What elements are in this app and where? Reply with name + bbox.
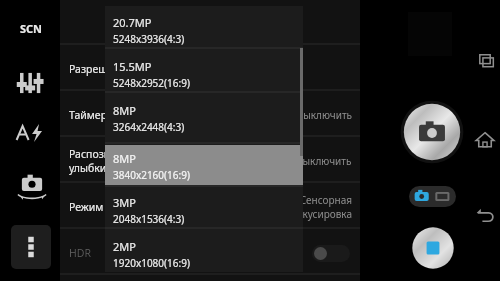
button[interactable]: 8MP xyxy=(105,145,303,185)
staticText: SCN xyxy=(20,21,43,36)
staticText: Сенсорная фокусировка xyxy=(289,193,352,221)
staticText: 3MP xyxy=(113,195,136,210)
staticText: улыбки xyxy=(69,161,107,175)
button[interactable]: Switch camera xyxy=(10,168,54,212)
button[interactable]: 8MP xyxy=(105,98,303,136)
button[interactable]: More options xyxy=(11,225,51,269)
button[interactable]: Back xyxy=(472,202,498,228)
staticText: 20.7MP xyxy=(113,15,152,30)
staticText: 8MP xyxy=(113,151,136,166)
button[interactable]: Manual mode xyxy=(410,225,456,271)
staticText: Выключить xyxy=(296,108,352,122)
staticText: Таймер съемки xyxy=(69,108,296,122)
button[interactable]: Режим фокусировки xyxy=(60,184,360,230)
staticText: 8MP xyxy=(113,103,136,118)
button[interactable]: Shutter xyxy=(400,100,464,164)
staticText: Разрешение xyxy=(69,62,360,76)
button[interactable]: SCN xyxy=(10,14,52,42)
staticText: Распознавание xyxy=(69,147,147,161)
staticText: 3264x2448(4:3) xyxy=(113,120,185,134)
staticText: 1920x1080(16:9) xyxy=(113,256,190,270)
staticText: 5248x3936(4:3) xyxy=(113,32,185,46)
staticText: 2MP xyxy=(113,239,136,254)
staticText: Выключить xyxy=(296,154,352,168)
button[interactable]: Photo video mode xyxy=(409,186,456,207)
button[interactable]: HDR xyxy=(60,230,360,276)
button[interactable]: 2MP xyxy=(105,234,303,272)
staticText: Режим фокусировки xyxy=(69,200,289,214)
button[interactable]: Home xyxy=(472,127,498,153)
button[interactable]: Распознавание xyxy=(60,138,360,184)
button[interactable]: 20.7MP xyxy=(105,10,303,48)
button[interactable]: Flash auto xyxy=(10,112,52,154)
button[interactable]: Разрешение xyxy=(60,46,360,92)
staticText: 3840x2160(16:9) xyxy=(113,168,190,182)
button[interactable]: Settings sliders xyxy=(10,62,52,104)
staticText: 5248x2952(16:9) xyxy=(113,76,190,90)
button[interactable]: 3MP xyxy=(105,190,303,228)
staticText: HDR xyxy=(69,246,312,260)
button[interactable]: 15.5MP xyxy=(105,54,303,92)
button[interactable]: Таймер съемки xyxy=(60,92,360,138)
staticText: 2048x1536(4:3) xyxy=(113,212,185,226)
button[interactable]: Recents xyxy=(472,48,498,74)
staticText: 15.5MP xyxy=(113,59,152,74)
